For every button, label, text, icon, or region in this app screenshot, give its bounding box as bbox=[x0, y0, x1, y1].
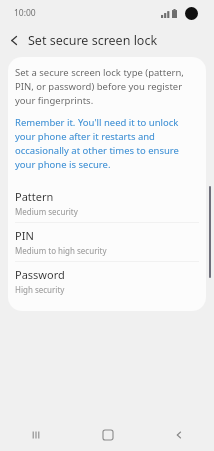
staticText: Set a secure screen lock type (pattern, … bbox=[15, 66, 199, 107]
staticText: Password bbox=[15, 267, 65, 282]
button[interactable]: PIN bbox=[8, 223, 206, 261]
button[interactable]: Back bbox=[0, 26, 28, 54]
staticText: PIN bbox=[15, 228, 34, 243]
button[interactable]: Back bbox=[143, 419, 214, 451]
staticText: High security bbox=[15, 284, 65, 295]
button[interactable]: Password bbox=[8, 262, 206, 300]
staticText: Medium to high security bbox=[15, 245, 107, 256]
button[interactable]: Recents bbox=[0, 419, 72, 451]
staticText: Set secure screen lock bbox=[28, 32, 158, 49]
button[interactable]: Home bbox=[72, 419, 143, 451]
staticText: Remember it. You'll need it to unlock yo… bbox=[15, 116, 199, 171]
button[interactable]: Pattern bbox=[8, 184, 206, 222]
staticText: 10:00 bbox=[14, 7, 36, 19]
staticText: Pattern bbox=[15, 189, 54, 204]
staticText: Medium security bbox=[15, 206, 78, 217]
